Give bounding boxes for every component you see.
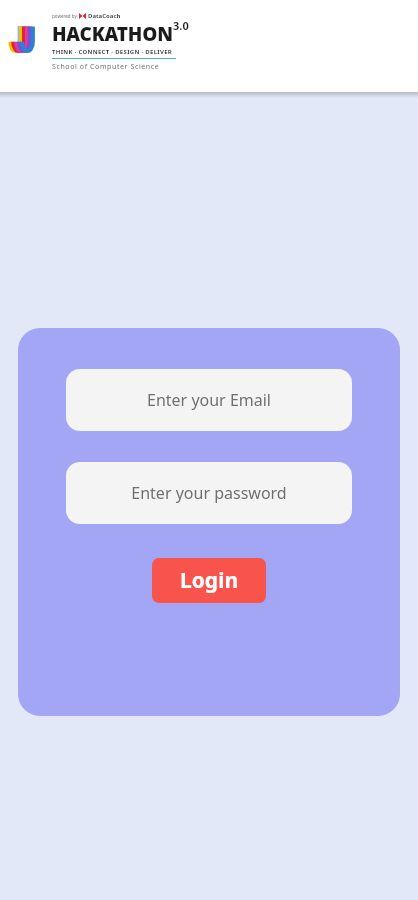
staticText: HACKATHON (52, 21, 173, 47)
staticText: 3.0 (173, 18, 189, 33)
button[interactable]: Login (152, 558, 266, 603)
staticText: THINK · CONNECT · DESIGN · DELIVER (52, 48, 173, 56)
staticText: Enter your Email (147, 389, 271, 411)
staticText: School of Computer Science (52, 62, 160, 72)
button[interactable]: Enter your Email (66, 369, 352, 431)
staticText: Enter your password (131, 482, 287, 504)
staticText: DataCoach (88, 12, 121, 20)
staticText: powered by (52, 13, 77, 19)
button[interactable]: Enter your password (66, 462, 352, 524)
staticText: Login (180, 566, 239, 595)
